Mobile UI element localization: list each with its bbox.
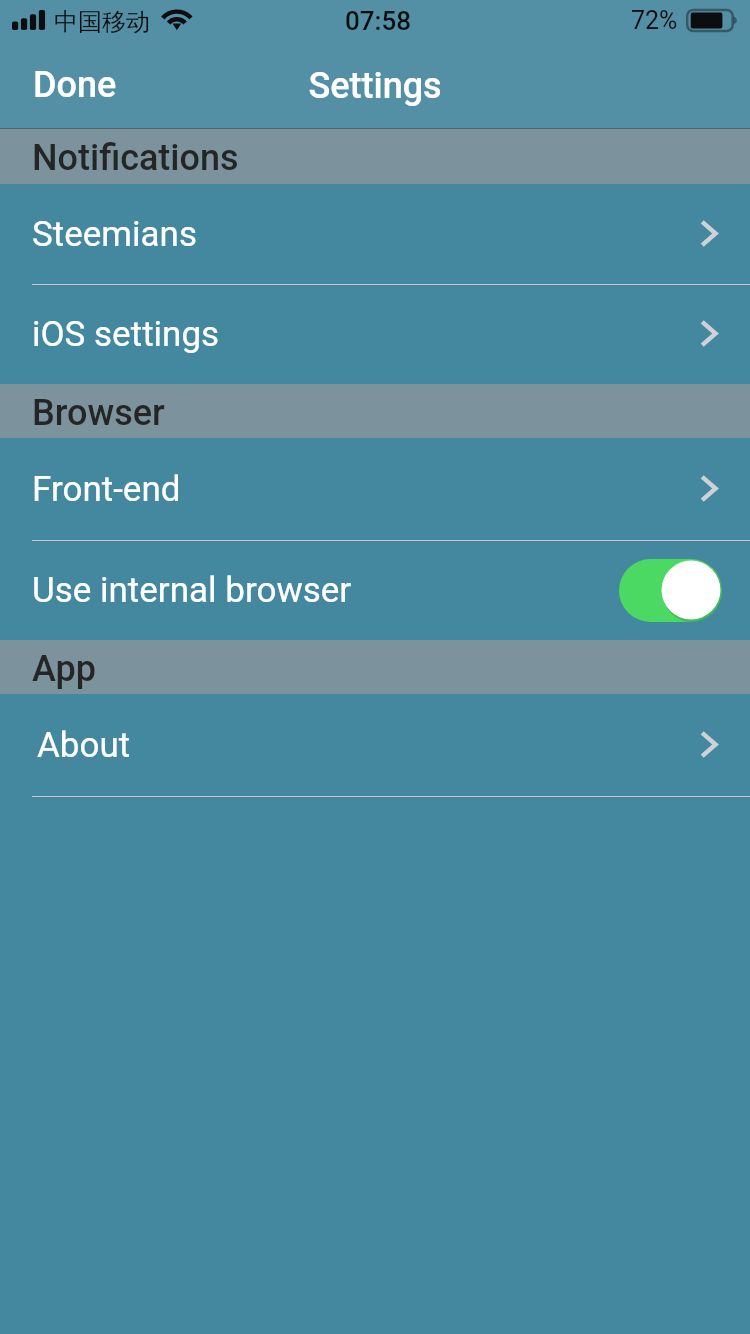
staticText: 07:58 [3, 6, 750, 36]
button[interactable]: Use internal browser, on [619, 559, 722, 622]
other: Cellular signal [12, 10, 48, 34]
button[interactable]: Done [0, 53, 141, 119]
button[interactable]: Use internal browser [0, 540, 750, 640]
staticText: Use internal browser [32, 570, 352, 611]
staticText: Done [33, 64, 117, 106]
button[interactable]: Steemians [0, 184, 750, 284]
staticText: Steemians [32, 214, 197, 255]
staticText: 中国移动 [54, 7, 150, 37]
button[interactable]: Front-end [0, 438, 750, 540]
staticText: Front-end [32, 469, 181, 510]
staticText: App [32, 648, 97, 690]
button[interactable]: About [0, 694, 750, 796]
staticText: Notifications [32, 137, 239, 179]
staticText: Browser [32, 392, 165, 434]
staticText: 72% [631, 6, 678, 35]
other: Wi-Fi [159, 2, 195, 34]
staticText: iOS settings [32, 314, 220, 355]
button[interactable]: iOS settings [0, 284, 750, 384]
staticText: About [37, 725, 131, 766]
other: Battery 72 percent [686, 9, 740, 33]
staticText: Settings [0, 65, 750, 107]
